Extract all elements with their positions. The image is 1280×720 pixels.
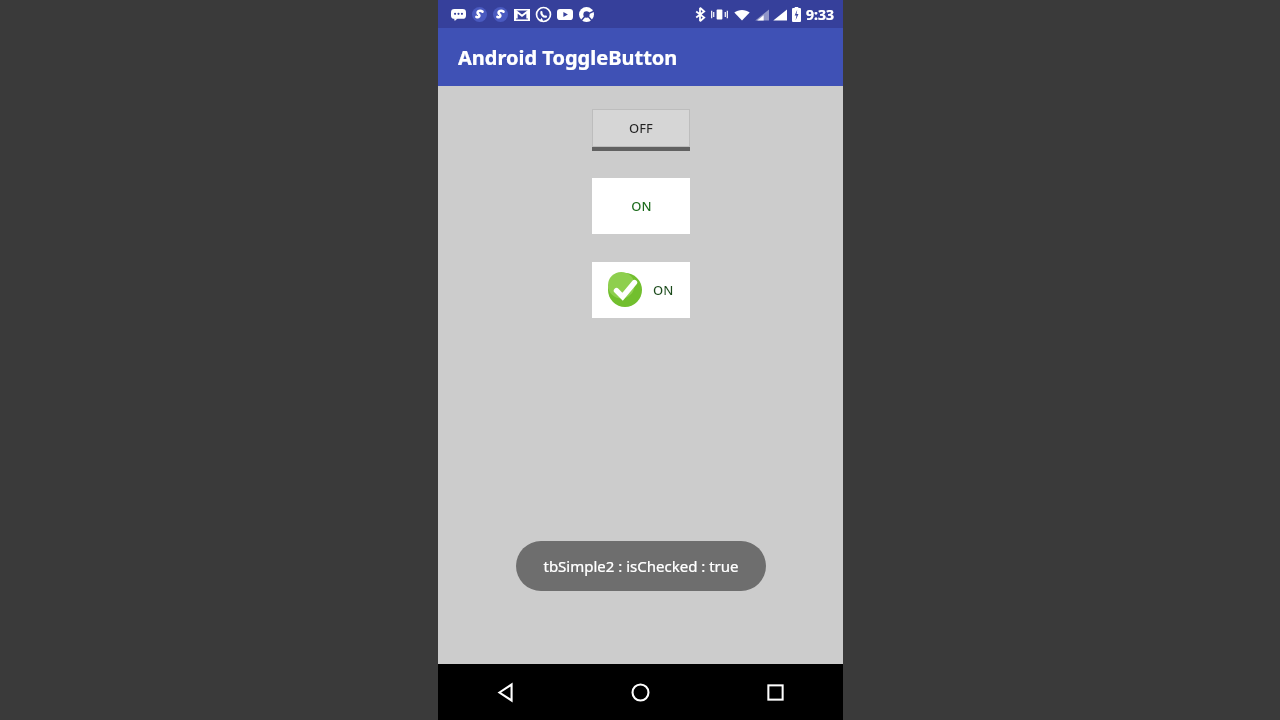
staticText: ON	[653, 281, 674, 299]
staticText: OFF	[629, 119, 653, 137]
staticText: 9:33	[806, 5, 834, 24]
button[interactable]: Recents	[708, 664, 843, 720]
button[interactable]: Toggle on with check icon	[592, 262, 690, 318]
button[interactable]: OFF	[592, 109, 690, 151]
staticText: Android ToggleButton	[458, 44, 678, 71]
staticText: tbSimple2 : isChecked : true	[543, 556, 739, 576]
button[interactable]: ON	[592, 178, 690, 234]
button[interactable]: Back	[438, 664, 573, 720]
button[interactable]: Home	[573, 664, 708, 720]
staticText: ON	[631, 197, 652, 215]
